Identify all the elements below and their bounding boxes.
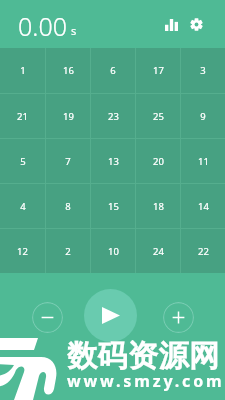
staticText: 22 [198,245,209,258]
button[interactable]: Subtract [32,302,63,333]
button[interactable]: 12 [0,229,45,273]
staticText: 19 [63,110,74,123]
button[interactable]: 2 [46,229,90,273]
staticText: 8 [65,200,71,213]
staticText: 14 [198,200,209,213]
staticText: 23 [108,110,119,123]
button[interactable]: 16 [46,48,90,93]
button[interactable]: 24 [136,229,180,273]
button[interactable]: 3 [181,48,225,93]
button[interactable]: Add [163,302,194,333]
staticText: 7 [65,155,71,168]
button[interactable]: 13 [91,139,135,183]
button[interactable]: 19 [46,94,90,138]
staticText: 17 [153,64,164,77]
staticText: 10 [108,245,119,258]
staticText: 11 [198,155,209,168]
button[interactable]: 14 [181,184,225,228]
button[interactable]: 23 [91,94,135,138]
staticText: 3 [200,64,206,77]
staticText: 12 [17,245,28,258]
button[interactable]: 21 [0,94,45,138]
staticText: 25 [153,110,164,123]
button[interactable]: 15 [91,184,135,228]
staticText: 0.00 [18,9,67,39]
button[interactable]: 22 [181,229,225,273]
button[interactable]: 17 [136,48,180,93]
staticText: 18 [153,200,164,213]
staticText: s [71,23,77,38]
button[interactable]: 1 [0,48,45,93]
staticText: 20 [153,155,164,168]
button[interactable]: 25 [136,94,180,138]
staticText: 4 [20,200,26,213]
button[interactable]: 6 [91,48,135,93]
button[interactable]: 4 [0,184,45,228]
staticText: 数码资源网 [67,337,220,375]
button[interactable]: 20 [136,139,180,183]
staticText: 2 [65,245,71,258]
button[interactable]: 10 [91,229,135,273]
button[interactable]: 8 [46,184,90,228]
button[interactable]: 5 [0,139,45,183]
button[interactable]: 18 [136,184,180,228]
staticText: 15 [108,200,119,213]
button[interactable]: Statistics [159,12,184,37]
button[interactable]: 11 [181,139,225,183]
staticText: 9 [200,110,206,123]
staticText: 1 [20,64,26,77]
staticText: 13 [108,155,119,168]
staticText: 24 [153,245,164,258]
button[interactable]: 9 [181,94,225,138]
staticText: www.smzy.com [67,370,225,392]
staticText: 6 [110,64,116,77]
button[interactable]: Settings [184,12,209,37]
button[interactable]: Start [84,289,137,342]
staticText: 5 [20,155,26,168]
staticText: 16 [63,64,74,77]
staticText: 21 [17,110,28,123]
button[interactable]: 7 [46,139,90,183]
